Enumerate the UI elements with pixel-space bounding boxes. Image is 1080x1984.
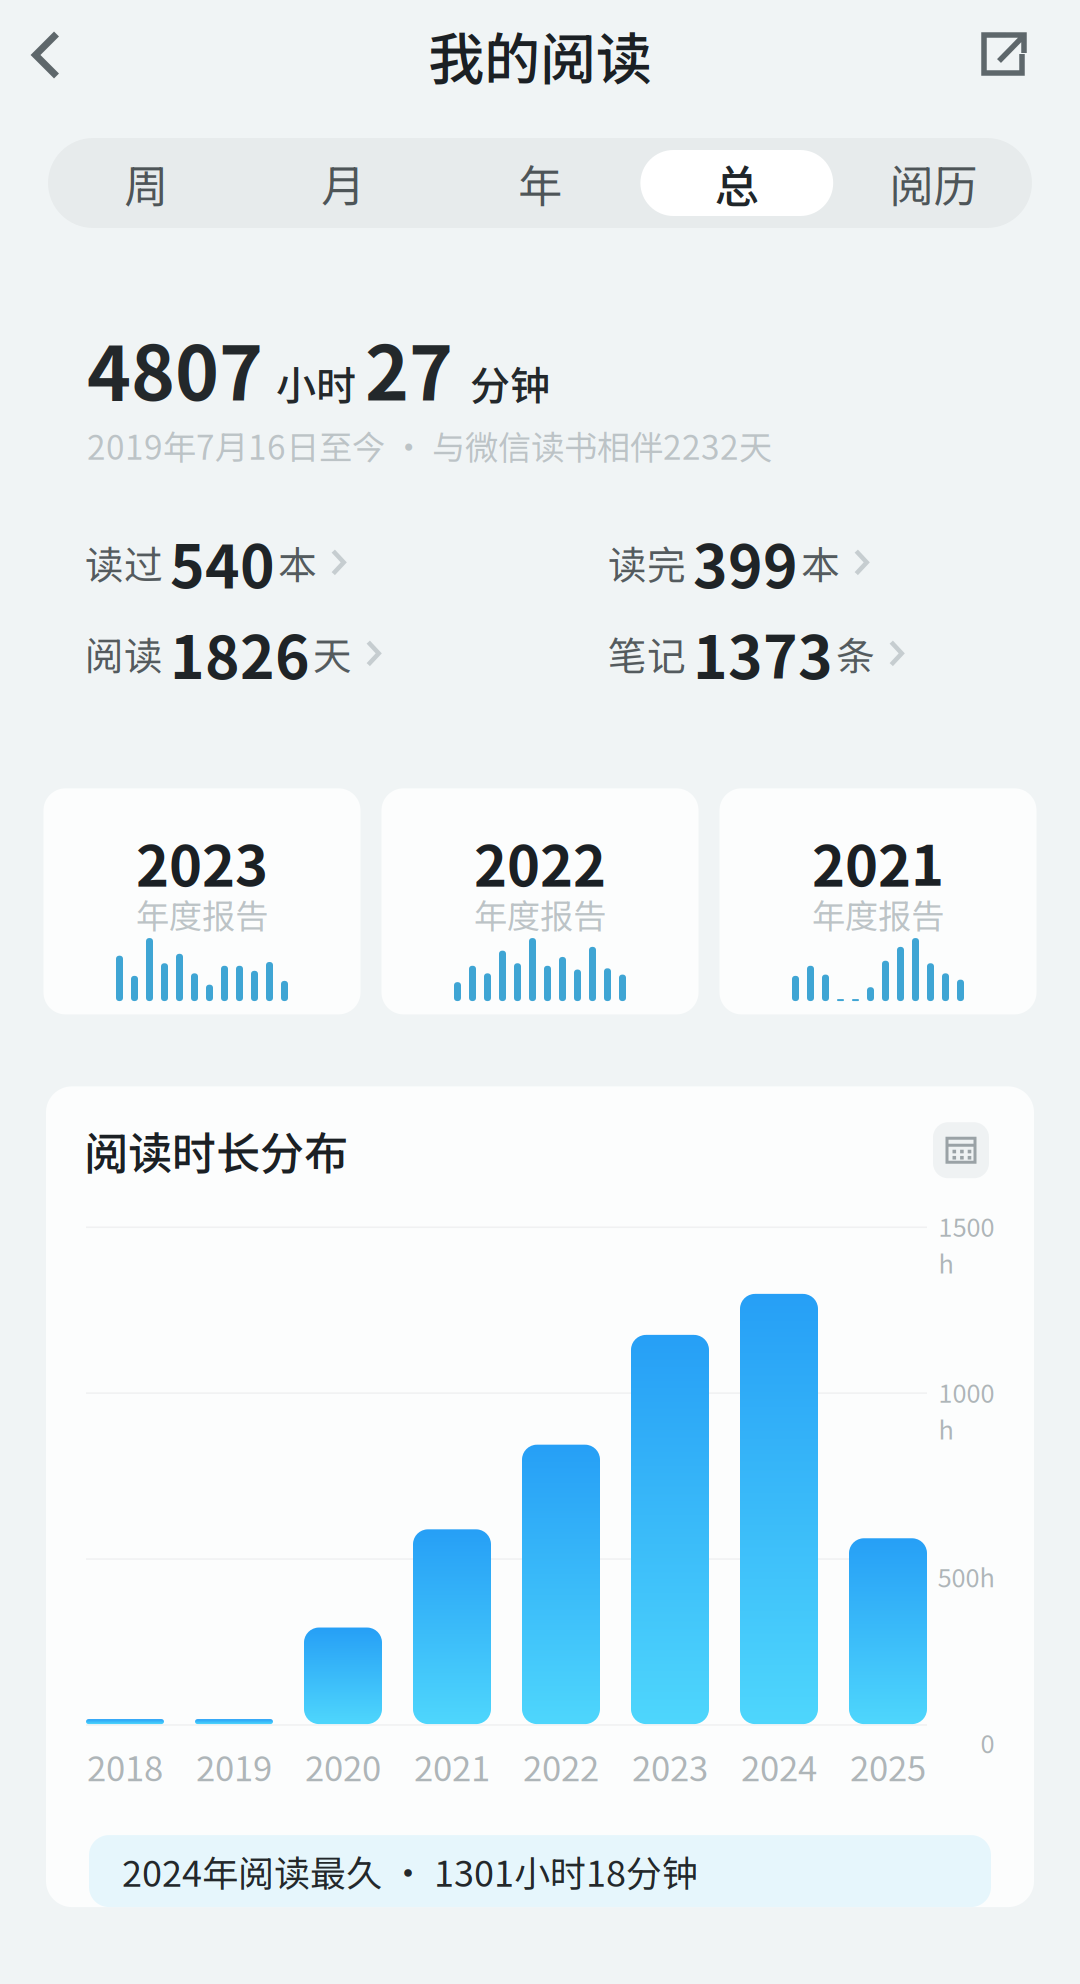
- staticText: 2022: [523, 1741, 599, 1791]
- staticText: 年: [518, 151, 562, 215]
- staticText: 笔记: [608, 625, 686, 681]
- staticText: 2024年阅读最久 · 1301小时18分钟: [122, 1845, 698, 1897]
- staticText: 年度报告: [812, 890, 944, 938]
- staticText: 阅读: [85, 625, 163, 681]
- staticText: 阅历: [890, 151, 978, 215]
- staticText: 500h: [937, 1558, 994, 1594]
- staticText: 阅读时长分布: [84, 1118, 348, 1182]
- staticText: 1373: [693, 611, 833, 696]
- button[interactable]: 阅读: [85, 622, 381, 684]
- staticText: 本: [278, 534, 317, 590]
- staticText: 我的阅读: [428, 14, 652, 96]
- staticText: 2019: [196, 1741, 272, 1791]
- staticText: 4807: [87, 314, 263, 422]
- staticText: 1826: [170, 611, 310, 696]
- staticText: 1500h: [938, 1207, 994, 1281]
- staticText: 2019年7月16日至今 · 与微信读书相伴2232天: [87, 421, 772, 469]
- staticText: 月: [321, 151, 365, 215]
- button[interactable]: 月: [245, 138, 442, 228]
- staticText: 2023: [632, 1741, 708, 1791]
- staticText: 2021: [414, 1741, 490, 1791]
- staticText: 2022: [474, 821, 606, 902]
- staticText: 2023: [136, 821, 268, 902]
- staticText: 年度报告: [474, 890, 606, 938]
- button[interactable]: 年: [442, 138, 638, 228]
- staticText: 1000h: [938, 1373, 994, 1447]
- button[interactable]: Share: [947, 8, 1080, 102]
- button[interactable]: 笔记: [608, 622, 904, 684]
- staticText: 总: [715, 151, 759, 215]
- button[interactable]: 阅历: [835, 138, 1032, 228]
- staticText: 27: [365, 314, 453, 422]
- button[interactable]: 周: [48, 138, 245, 228]
- staticText: 周: [124, 151, 168, 215]
- button[interactable]: 读完: [608, 531, 869, 593]
- staticText: 2018: [87, 1741, 163, 1791]
- button[interactable]: 2022: [381, 788, 698, 1014]
- staticText: 天: [313, 625, 352, 681]
- button[interactable]: Back: [0, 6, 96, 103]
- staticText: 本: [801, 534, 840, 590]
- staticText: 分钟: [470, 354, 550, 412]
- button[interactable]: 读过: [85, 531, 346, 593]
- staticText: 2020: [305, 1741, 381, 1791]
- button[interactable]: 总: [638, 138, 835, 228]
- staticText: 399: [693, 520, 798, 605]
- staticText: 2024: [741, 1741, 817, 1791]
- staticText: 读完: [608, 534, 686, 590]
- staticText: 2025: [850, 1741, 926, 1791]
- staticText: 读过: [85, 534, 163, 590]
- staticText: 2021: [812, 821, 944, 902]
- staticText: 年度报告: [136, 890, 268, 938]
- staticText: 0: [980, 1724, 994, 1760]
- button[interactable]: 2023: [43, 788, 360, 1014]
- staticText: 条: [836, 625, 875, 681]
- button[interactable]: Calendar: [933, 1122, 989, 1178]
- button[interactable]: 2021: [719, 788, 1036, 1014]
- staticText: 小时: [276, 354, 356, 412]
- staticText: 540: [170, 520, 275, 605]
